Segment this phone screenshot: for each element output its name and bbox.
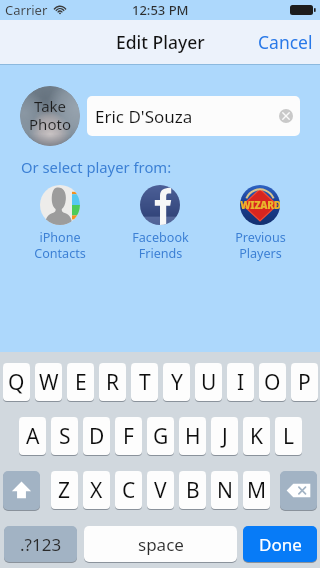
button[interactable]: X	[83, 471, 110, 509]
staticText: space	[138, 533, 184, 556]
button[interactable]: Q	[3, 363, 30, 401]
button[interactable]: WIZARD	[220, 185, 300, 261]
button[interactable]: W	[35, 363, 62, 401]
staticText: Z	[58, 476, 71, 505]
staticText: T	[139, 368, 151, 397]
button[interactable]: M	[243, 471, 270, 509]
button[interactable]: D	[83, 417, 110, 455]
staticText: K	[250, 422, 263, 451]
button[interactable]: O	[259, 363, 286, 401]
staticText: E	[75, 368, 87, 397]
staticText: Edit Player	[116, 30, 205, 54]
button[interactable]: N	[211, 471, 238, 509]
button[interactable]: space	[84, 526, 237, 562]
button[interactable]: P	[291, 363, 318, 401]
staticText: U	[201, 368, 217, 397]
button[interactable]: H	[179, 417, 206, 455]
staticText: Eric D'Souza	[95, 105, 193, 128]
button[interactable]: iPhone Contacts	[20, 185, 100, 261]
staticText: Previous Players	[235, 229, 286, 261]
button[interactable]: I	[227, 363, 254, 401]
staticText: S	[59, 422, 71, 451]
staticText: Carrier	[5, 1, 48, 19]
staticText: Facebook Friends	[132, 229, 189, 261]
staticText: V	[154, 476, 167, 505]
button[interactable]: R	[99, 363, 126, 401]
button[interactable]: B	[179, 471, 206, 509]
button[interactable]: U	[195, 363, 222, 401]
staticText: Q	[8, 368, 25, 397]
button[interactable]: Done	[243, 526, 317, 562]
button[interactable]: S	[51, 417, 78, 455]
button[interactable]: C	[115, 471, 142, 509]
staticText: J	[222, 422, 228, 451]
button[interactable]: Facebook Friends	[120, 185, 200, 261]
staticText: N	[217, 476, 233, 505]
button[interactable]: T	[131, 363, 158, 401]
staticText: W	[39, 368, 59, 397]
staticText: R	[106, 368, 120, 397]
button[interactable]: G	[147, 417, 174, 455]
staticText: H	[185, 422, 201, 451]
staticText: iPhone Contacts	[34, 229, 86, 261]
button[interactable]: Take Photo	[20, 86, 80, 146]
staticText: Cancel	[258, 30, 313, 54]
button[interactable]: J	[211, 417, 238, 455]
staticText: D	[89, 422, 105, 451]
button[interactable]: A	[19, 417, 46, 455]
staticText: M	[247, 476, 267, 505]
button[interactable]: Y	[163, 363, 190, 401]
staticText: G	[153, 422, 169, 451]
staticText: WIZARD	[240, 198, 280, 212]
staticText: P	[298, 368, 311, 397]
button[interactable]: Z	[51, 471, 78, 509]
staticText: .?123	[20, 533, 62, 556]
staticText: F	[123, 422, 134, 451]
button[interactable]: F	[115, 417, 142, 455]
staticText: A	[26, 422, 40, 451]
button[interactable]: Shift	[3, 471, 40, 510]
button[interactable]: K	[243, 417, 270, 455]
button[interactable]: L	[275, 417, 302, 455]
staticText: X	[90, 476, 103, 505]
button[interactable]: Clear text	[279, 109, 293, 123]
button[interactable]: E	[67, 363, 94, 401]
staticText: L	[283, 422, 295, 451]
staticText: Y	[171, 368, 183, 397]
staticText: 12:53 PM	[132, 1, 189, 19]
staticText: Take Photo	[29, 96, 71, 135]
staticText: C	[122, 476, 136, 505]
button[interactable]: Eric D'Souza	[87, 96, 300, 136]
button[interactable]: .?123	[4, 526, 77, 562]
staticText: I	[237, 368, 245, 397]
button[interactable]: Backspace	[280, 471, 317, 510]
staticText: O	[264, 368, 281, 397]
staticText: Done	[259, 533, 302, 556]
button[interactable]: V	[147, 471, 174, 509]
button[interactable]: Cancel	[251, 20, 320, 64]
staticText: Or select player from:	[21, 157, 172, 177]
staticText: B	[186, 476, 200, 505]
